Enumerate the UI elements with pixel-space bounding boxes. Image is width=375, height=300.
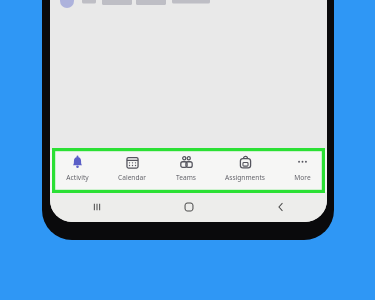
button[interactable] [50, 0, 327, 10]
staticText: More [294, 173, 311, 182]
staticText: Activity [66, 173, 89, 182]
button[interactable]: Teams [159, 150, 213, 192]
staticText: Assignments [225, 173, 265, 182]
button[interactable]: Calendar [105, 150, 159, 192]
button[interactable]: More [277, 150, 327, 192]
staticText: Calendar [118, 173, 146, 182]
button[interactable]: Activity [50, 150, 105, 192]
button[interactable]: Assignments [213, 150, 277, 192]
button[interactable]: Back [235, 192, 327, 222]
button[interactable]: Home [143, 192, 235, 222]
staticText: Teams [176, 173, 196, 182]
button[interactable]: Recent apps [50, 192, 143, 222]
